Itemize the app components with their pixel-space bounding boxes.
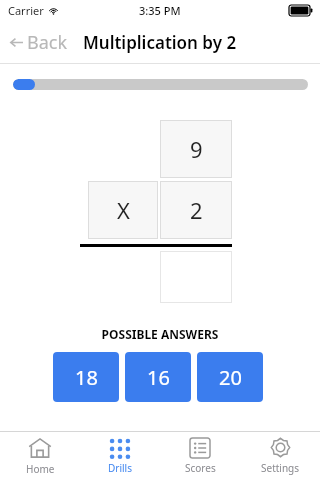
staticText: 20	[219, 364, 242, 391]
button[interactable]	[160, 251, 232, 303]
button[interactable]: Home	[0, 431, 80, 480]
staticText: Home	[26, 462, 55, 476]
button[interactable]: X	[88, 181, 158, 239]
staticText: Drills	[108, 461, 132, 475]
button[interactable]: Drills	[80, 431, 160, 480]
button[interactable]: 2	[160, 181, 232, 239]
staticText: 9	[190, 134, 203, 164]
staticText: Carrier	[8, 3, 44, 18]
staticText: 3:35 PM	[139, 3, 181, 18]
other: Drills	[109, 437, 131, 459]
button[interactable]: 18	[53, 352, 119, 402]
staticText: Scores	[185, 461, 216, 475]
button[interactable]: 9	[160, 120, 232, 178]
other: Settings	[269, 436, 292, 459]
button[interactable]: 16	[125, 352, 191, 402]
other: Scores	[189, 437, 211, 459]
staticText: Settings	[261, 461, 300, 475]
staticText: POSSIBLE ANSWERS	[0, 326, 320, 342]
staticText: 2	[190, 195, 203, 225]
staticText: 16	[147, 364, 170, 391]
staticText: X	[117, 195, 130, 225]
staticText: Multiplication by 2	[83, 31, 237, 54]
button[interactable]: Settings	[240, 431, 320, 480]
other: Home	[28, 436, 52, 460]
button[interactable]: 20	[197, 352, 263, 402]
staticText: Back	[27, 30, 68, 55]
button[interactable]: Scores	[160, 431, 240, 480]
button[interactable]: Back	[0, 22, 80, 63]
staticText: 18	[75, 364, 98, 391]
